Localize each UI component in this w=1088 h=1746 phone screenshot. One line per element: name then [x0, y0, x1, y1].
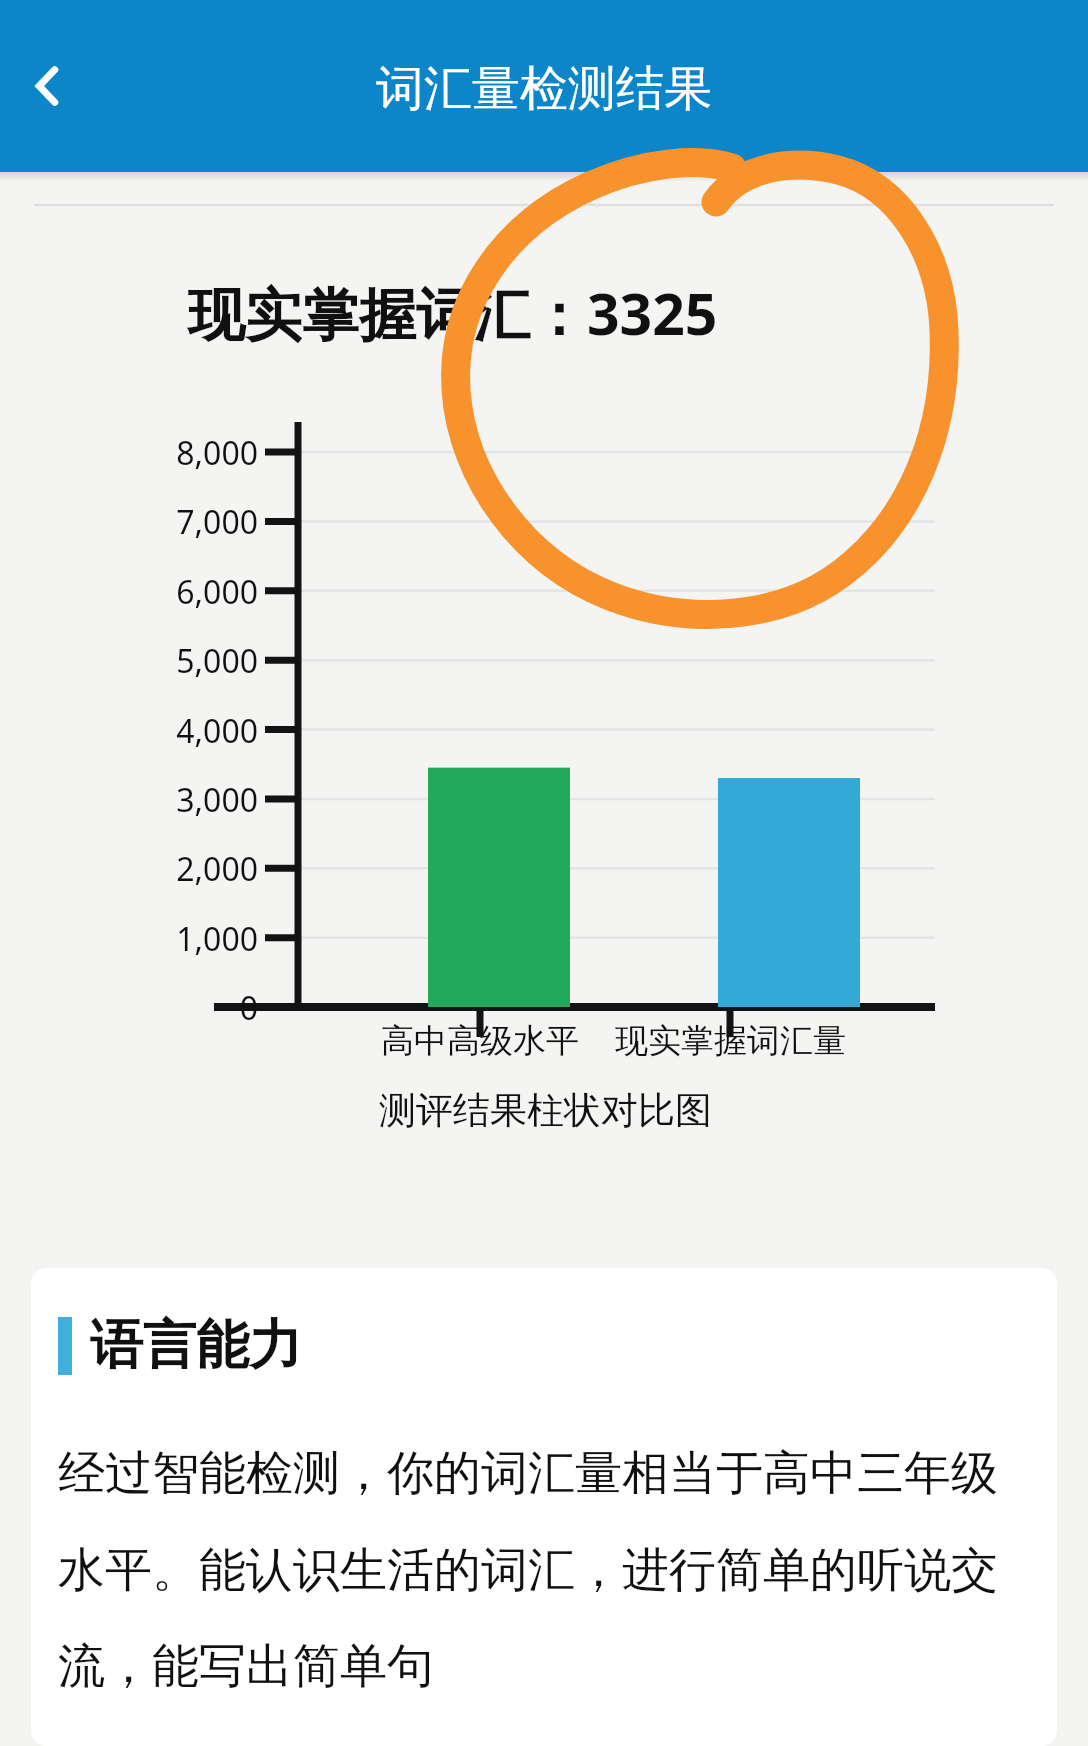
staticText: 语言能力	[90, 1312, 302, 1376]
staticText: 现实掌握词汇量	[615, 1020, 846, 1062]
staticText: 0	[239, 986, 258, 1030]
staticText: 测评结果柱状对比图	[379, 1087, 712, 1134]
staticText: 7,000	[176, 500, 258, 544]
staticText: 经过智能检测，你的词汇量相当于高中三年级水平。能认识生活的词汇，进行简单的听说交…	[58, 1444, 1035, 1696]
staticText: 5,000	[176, 639, 258, 683]
staticText: 词汇量检测结果	[376, 59, 712, 119]
staticText: 2,000	[176, 847, 258, 891]
button[interactable]: Back	[14, 52, 82, 120]
staticText: 8,000	[176, 431, 258, 475]
staticText: 现实掌握词汇：3325	[188, 274, 718, 352]
staticText: 3,000	[176, 778, 258, 822]
staticText: 高中高级水平	[381, 1020, 579, 1062]
staticText: 6,000	[176, 570, 258, 614]
staticText: 1,000	[176, 917, 258, 961]
button[interactable]: 语言能力	[31, 1268, 1057, 1746]
staticText: 4,000	[176, 709, 258, 753]
